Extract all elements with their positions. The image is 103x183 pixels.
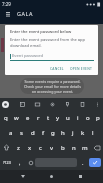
button[interactable]: Home — [45, 170, 58, 183]
button[interactable]: Stickers — [18, 100, 26, 108]
staticText: m — [82, 144, 88, 152]
button[interactable]: b — [57, 140, 68, 155]
staticText: n — [72, 144, 76, 152]
staticText: Event password — [12, 53, 43, 59]
button[interactable]: h — [58, 125, 68, 140]
staticText: l — [92, 129, 94, 137]
button[interactable]: r — [33, 110, 43, 125]
button[interactable]: g — [48, 125, 58, 140]
button[interactable]: CANCEL — [48, 63, 66, 73]
button[interactable]: j — [68, 125, 78, 140]
staticText: e — [26, 114, 30, 122]
button[interactable]: ?123 — [0, 155, 13, 170]
staticText: Some events require a password. Check yo… — [24, 79, 81, 94]
staticText: d — [31, 129, 35, 137]
button[interactable]: Clipboard — [78, 100, 86, 108]
staticText: k — [81, 129, 85, 137]
staticText: GALA — [17, 10, 34, 17]
button[interactable]: l — [88, 125, 98, 140]
button[interactable]: p — [93, 110, 103, 125]
button[interactable]: Backspace — [90, 140, 103, 155]
staticText: , — [19, 159, 21, 166]
button[interactable]: c — [35, 140, 46, 155]
button[interactable]: Back — [16, 170, 29, 183]
staticText: s — [20, 129, 23, 137]
button[interactable]: . — [77, 155, 88, 170]
button[interactable]: w — [11, 110, 22, 125]
staticText: i — [77, 114, 79, 122]
staticText: r — [37, 114, 40, 122]
button[interactable]: o — [83, 110, 93, 125]
button[interactable]: s — [16, 125, 27, 140]
staticText: ?123 — [3, 160, 11, 165]
button[interactable]: Settings — [48, 100, 56, 108]
staticText: h — [61, 129, 65, 137]
button[interactable]: e — [22, 110, 33, 125]
button[interactable]: i — [73, 110, 83, 125]
button[interactable]: x — [24, 140, 35, 155]
button[interactable]: q — [0, 110, 11, 125]
button[interactable]: y — [53, 110, 63, 125]
button[interactable]: Shift — [0, 140, 13, 155]
button[interactable]: m — [79, 140, 90, 155]
button[interactable]: k — [78, 125, 88, 140]
staticText: j — [72, 129, 74, 137]
button[interactable]: , — [13, 155, 26, 170]
staticText: p — [96, 114, 100, 122]
staticText: o — [86, 114, 90, 122]
button[interactable]: Menu — [2, 8, 13, 19]
button[interactable]: t — [43, 110, 53, 125]
staticText: g — [51, 129, 55, 137]
button[interactable]: Emoji — [26, 155, 35, 170]
staticText: . — [82, 159, 84, 166]
button[interactable]: Google — [2, 101, 9, 108]
staticText: Enter the event password from the app do… — [10, 37, 94, 48]
button[interactable]: GIF — [33, 100, 41, 108]
staticText: q — [4, 114, 8, 122]
staticText: u — [66, 114, 70, 122]
staticText: v — [50, 144, 54, 152]
button[interactable]: d — [27, 125, 38, 140]
staticText: 7:29 — [2, 1, 11, 7]
staticText: c — [39, 144, 42, 152]
button[interactable]: a — [5, 125, 16, 140]
button[interactable]: u — [63, 110, 73, 125]
staticText: x — [28, 144, 32, 152]
staticText: a — [9, 129, 13, 137]
button[interactable]: Enter — [89, 158, 101, 167]
staticText: f — [42, 129, 45, 137]
staticText: t — [47, 114, 50, 122]
button[interactable]: n — [68, 140, 79, 155]
button[interactable]: f — [38, 125, 48, 140]
button[interactable]: OPEN EVENT — [68, 63, 94, 73]
staticText: CANCEL — [50, 66, 64, 70]
staticText: b — [61, 144, 65, 152]
button[interactable]: More options — [93, 100, 101, 108]
staticText: z — [17, 144, 20, 152]
staticText: w — [14, 114, 19, 122]
button[interactable]: Voice input — [63, 100, 71, 108]
button[interactable]: z — [13, 140, 24, 155]
button[interactable]: v — [46, 140, 57, 155]
staticText: y — [56, 114, 60, 122]
button[interactable]: Recents — [74, 170, 87, 183]
staticText: OPEN EVENT — [70, 66, 92, 70]
staticText: Enter the event password below — [10, 29, 72, 34]
